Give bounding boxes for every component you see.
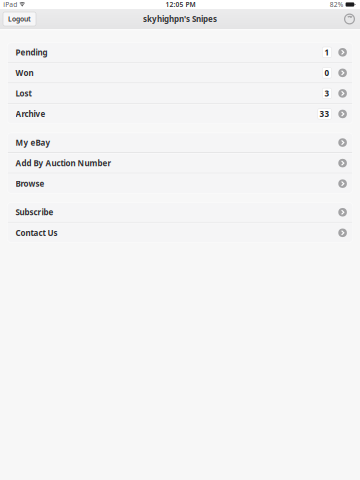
button[interactable]: Pending xyxy=(7,43,352,62)
staticText: Subscribe xyxy=(15,207,53,217)
staticText: 12:05 PM xyxy=(165,0,195,9)
button[interactable]: Lost xyxy=(7,84,352,103)
staticText: Won xyxy=(15,67,33,78)
button[interactable]: Refresh xyxy=(344,13,355,24)
staticText: My eBay xyxy=(15,137,50,148)
staticText: Pending xyxy=(15,47,47,58)
staticText: skyhighpn's Snipes xyxy=(143,14,217,24)
staticText: 82% xyxy=(330,0,344,9)
staticText: Contact Us xyxy=(15,227,57,238)
staticText: Archive xyxy=(15,109,45,119)
staticText: Logout xyxy=(8,15,31,23)
button[interactable]: Won xyxy=(7,63,352,82)
button[interactable]: Add By Auction Number xyxy=(7,153,352,173)
staticText: 3 xyxy=(324,88,329,99)
button[interactable]: My eBay xyxy=(7,133,352,152)
staticText: Lost xyxy=(15,88,31,99)
button[interactable]: Browse xyxy=(7,174,352,193)
staticText: 0 xyxy=(324,67,329,78)
staticText: 1 xyxy=(324,47,329,58)
button[interactable]: Subscribe xyxy=(7,202,352,222)
staticText: Browse xyxy=(15,178,44,189)
staticText: 33 xyxy=(320,109,330,119)
button[interactable]: Logout xyxy=(3,12,36,26)
button[interactable]: Archive xyxy=(7,104,352,124)
staticText: iPad xyxy=(3,0,17,9)
staticText: Add By Auction Number xyxy=(15,158,111,168)
button[interactable]: Contact Us xyxy=(7,223,352,242)
